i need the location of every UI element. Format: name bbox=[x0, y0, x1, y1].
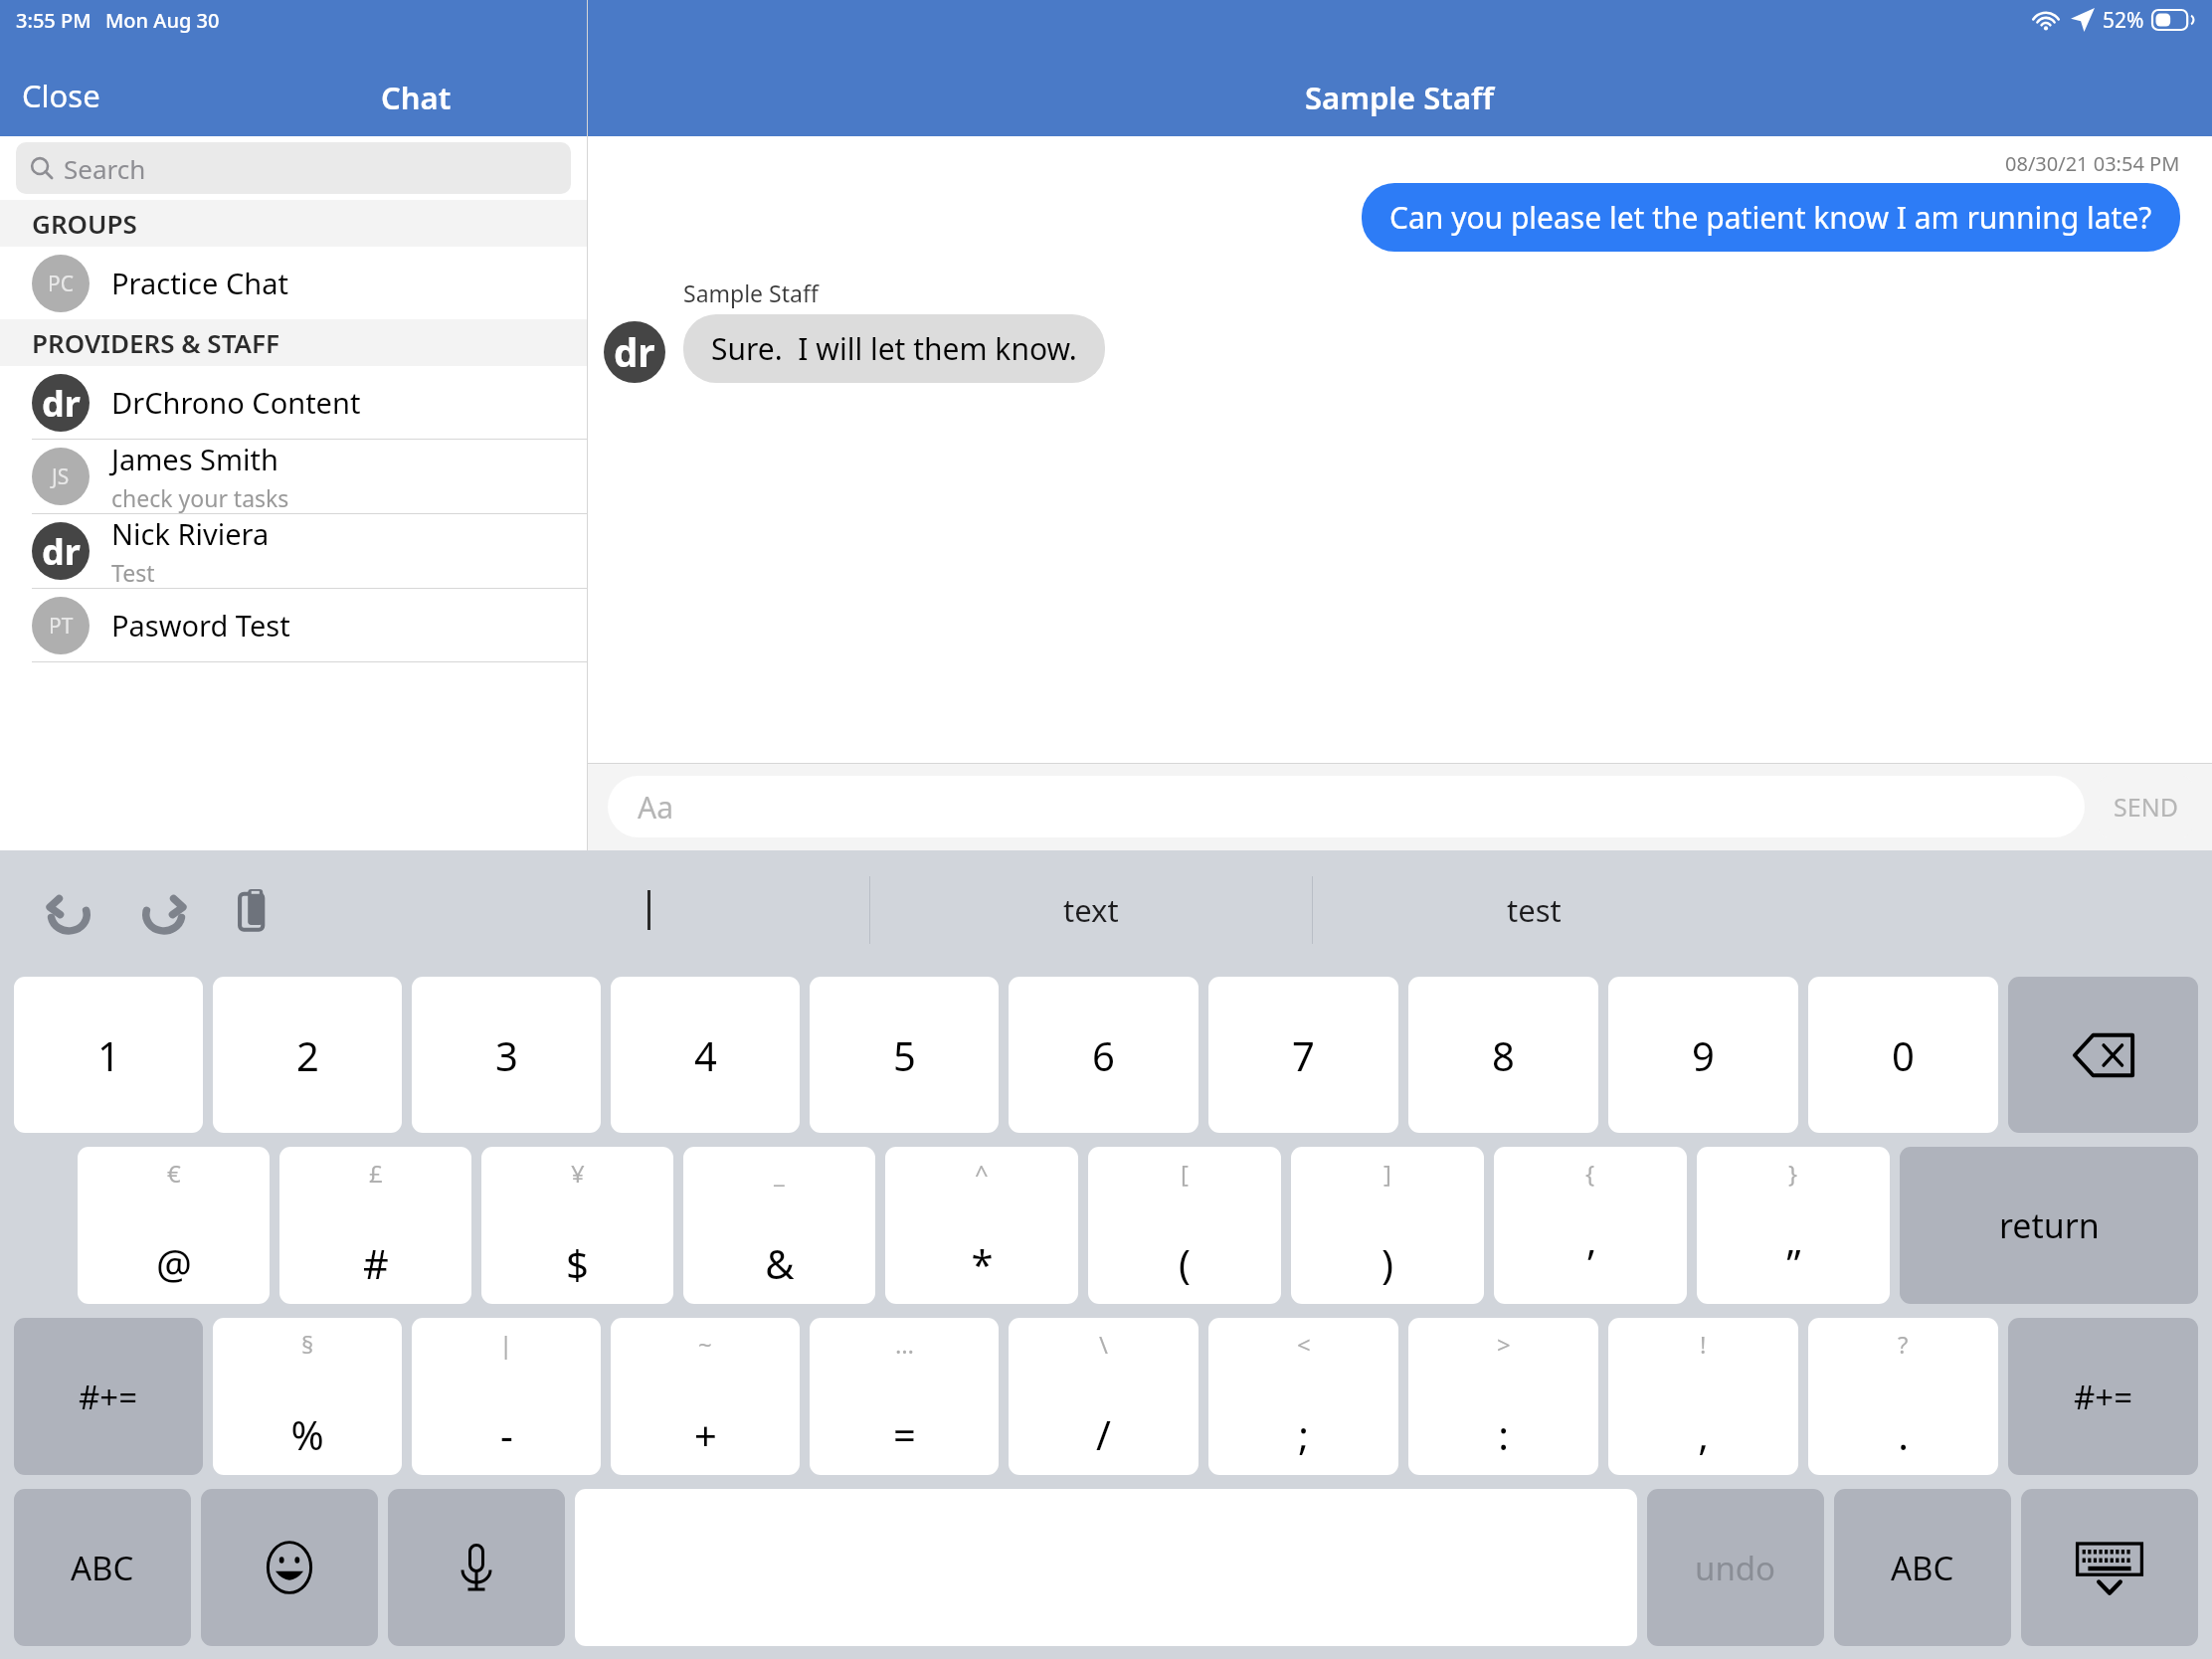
button[interactable]: ! bbox=[1608, 1318, 1798, 1475]
button[interactable]: 2 bbox=[213, 977, 402, 1133]
button[interactable]: { bbox=[1494, 1147, 1687, 1304]
button[interactable]: Redo bbox=[133, 881, 191, 939]
staticText: … bbox=[895, 1328, 914, 1361]
staticText: #+= bbox=[2074, 1375, 2133, 1419]
button[interactable]: § bbox=[213, 1318, 402, 1475]
button[interactable]: } bbox=[1697, 1147, 1890, 1304]
staticText: JS bbox=[52, 462, 70, 490]
button[interactable]: dr bbox=[0, 366, 587, 439]
button[interactable]: \ bbox=[1009, 1318, 1198, 1475]
button[interactable] bbox=[428, 850, 869, 970]
button[interactable]: 0 bbox=[1808, 977, 1998, 1133]
staticText: | bbox=[499, 1328, 513, 1361]
button[interactable]: 7 bbox=[1208, 977, 1398, 1133]
staticText: GROUPS bbox=[32, 206, 137, 241]
button[interactable]: dr bbox=[0, 514, 587, 588]
staticText: SEND bbox=[2114, 790, 2178, 824]
button[interactable]: Paste bbox=[225, 881, 282, 939]
staticText: $ bbox=[566, 1236, 589, 1290]
button[interactable]: PC bbox=[0, 247, 587, 319]
button[interactable]: Can you please let the patient know I am… bbox=[1362, 183, 2180, 252]
button[interactable]: 8 bbox=[1408, 977, 1598, 1133]
staticText: 8 bbox=[1492, 1028, 1515, 1082]
button[interactable]: Undo bbox=[42, 881, 99, 939]
staticText: 1 bbox=[97, 1028, 120, 1082]
button[interactable]: #+= bbox=[14, 1318, 203, 1475]
button[interactable]: Delete bbox=[2008, 977, 2198, 1133]
button[interactable]: 5 bbox=[810, 977, 999, 1133]
staticText: return bbox=[1999, 1202, 2100, 1248]
button[interactable]: [ bbox=[1088, 1147, 1281, 1304]
button[interactable]: Close bbox=[18, 73, 104, 118]
staticText: # bbox=[363, 1236, 389, 1290]
staticText: check your tasks bbox=[111, 482, 289, 513]
button[interactable]: Hide keyboard bbox=[2021, 1489, 2198, 1646]
staticText: Chat bbox=[381, 77, 452, 118]
staticText: ¥ bbox=[571, 1157, 585, 1190]
staticText: _ bbox=[774, 1157, 785, 1190]
button[interactable]: ABC bbox=[14, 1489, 191, 1646]
button[interactable]: Emoji bbox=[201, 1489, 378, 1646]
staticText: \ bbox=[1099, 1328, 1108, 1361]
staticText: ^ bbox=[975, 1157, 989, 1190]
staticText: 9 bbox=[1692, 1028, 1715, 1082]
button[interactable]: | bbox=[412, 1318, 601, 1475]
staticText: James Smith bbox=[111, 440, 278, 478]
staticText: PC bbox=[48, 270, 74, 297]
staticText: Aa bbox=[638, 787, 673, 828]
staticText: @ bbox=[156, 1236, 192, 1290]
staticText: + bbox=[694, 1407, 717, 1461]
button[interactable]: > bbox=[1408, 1318, 1598, 1475]
button[interactable]: SEND bbox=[2099, 776, 2192, 837]
button[interactable]: … bbox=[810, 1318, 999, 1475]
button[interactable]: return bbox=[1900, 1147, 2198, 1304]
button[interactable]: PT bbox=[0, 589, 587, 661]
button[interactable]: Aa bbox=[608, 776, 2085, 837]
staticText: 52% bbox=[2103, 6, 2144, 35]
button[interactable]: < bbox=[1208, 1318, 1398, 1475]
button[interactable]: Dictate bbox=[388, 1489, 565, 1646]
staticText: £ bbox=[369, 1157, 383, 1190]
button[interactable]: 9 bbox=[1608, 977, 1798, 1133]
staticText: Can you please let the patient know I am… bbox=[1389, 197, 2152, 238]
staticText: ( bbox=[1179, 1236, 1191, 1290]
button[interactable]: ~ bbox=[611, 1318, 800, 1475]
button[interactable]: _ bbox=[683, 1147, 875, 1304]
button[interactable]: ] bbox=[1291, 1147, 1484, 1304]
staticText: PROVIDERS & STAFF bbox=[32, 325, 280, 360]
staticText: text bbox=[1063, 889, 1119, 931]
button[interactable]: 1 bbox=[14, 977, 203, 1133]
staticText: ) bbox=[1382, 1236, 1393, 1290]
staticText: } bbox=[1788, 1157, 1798, 1190]
button[interactable]: undo bbox=[1647, 1489, 1824, 1646]
staticText: Sure. I will let them know. bbox=[711, 328, 1077, 369]
button[interactable]: JS bbox=[0, 440, 587, 513]
button[interactable]: ^ bbox=[885, 1147, 1078, 1304]
button[interactable]: ? bbox=[1808, 1318, 1998, 1475]
staticText: , bbox=[1698, 1407, 1709, 1461]
button[interactable]: 6 bbox=[1009, 977, 1198, 1133]
button[interactable]: € bbox=[78, 1147, 270, 1304]
staticText: & bbox=[765, 1236, 795, 1290]
staticText: [ bbox=[1181, 1157, 1189, 1190]
staticText: DrChrono Content bbox=[111, 383, 361, 422]
button[interactable]: £ bbox=[279, 1147, 471, 1304]
staticText: Mon Aug 30 bbox=[105, 7, 220, 34]
button[interactable]: #+= bbox=[2008, 1318, 2198, 1475]
staticText: - bbox=[500, 1407, 513, 1461]
button[interactable]: test bbox=[1313, 850, 1754, 970]
staticText: < bbox=[1297, 1328, 1311, 1361]
button[interactable]: ABC bbox=[1834, 1489, 2011, 1646]
staticText: ABC bbox=[71, 1546, 134, 1590]
staticText: Test bbox=[111, 557, 155, 588]
button[interactable]: ¥ bbox=[481, 1147, 673, 1304]
button[interactable]: Search bbox=[16, 142, 571, 194]
button[interactable]: Sure. I will let them know. bbox=[683, 314, 1105, 383]
staticText: € bbox=[167, 1157, 181, 1190]
button[interactable]: 3 bbox=[412, 977, 601, 1133]
button[interactable]: 4 bbox=[611, 977, 800, 1133]
button[interactable]: text bbox=[870, 850, 1312, 970]
staticText: 4 bbox=[694, 1028, 717, 1082]
staticText: Close bbox=[22, 75, 100, 116]
